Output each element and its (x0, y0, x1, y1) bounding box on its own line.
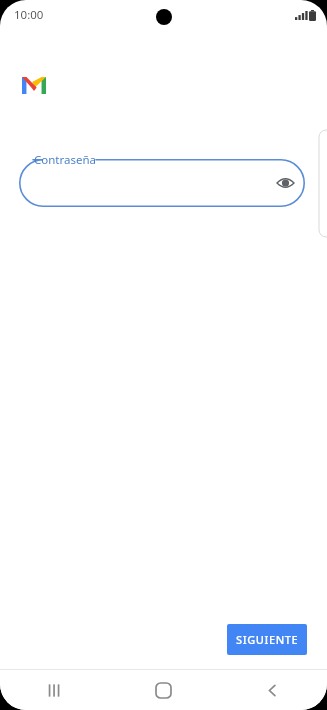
button[interactable]: Show password (272, 170, 298, 196)
button[interactable]: Back (218, 670, 327, 710)
other: Gmail (22, 77, 46, 94)
staticText: Contraseña (34, 152, 97, 168)
staticText: SIGUIENTE (236, 632, 299, 647)
button[interactable]: Recent apps (0, 670, 109, 710)
button[interactable]: Home (109, 670, 218, 710)
button[interactable]: SIGUIENTE (227, 624, 307, 655)
button[interactable]: Contraseña (19, 159, 305, 207)
staticText: 10:00 (14, 7, 44, 23)
